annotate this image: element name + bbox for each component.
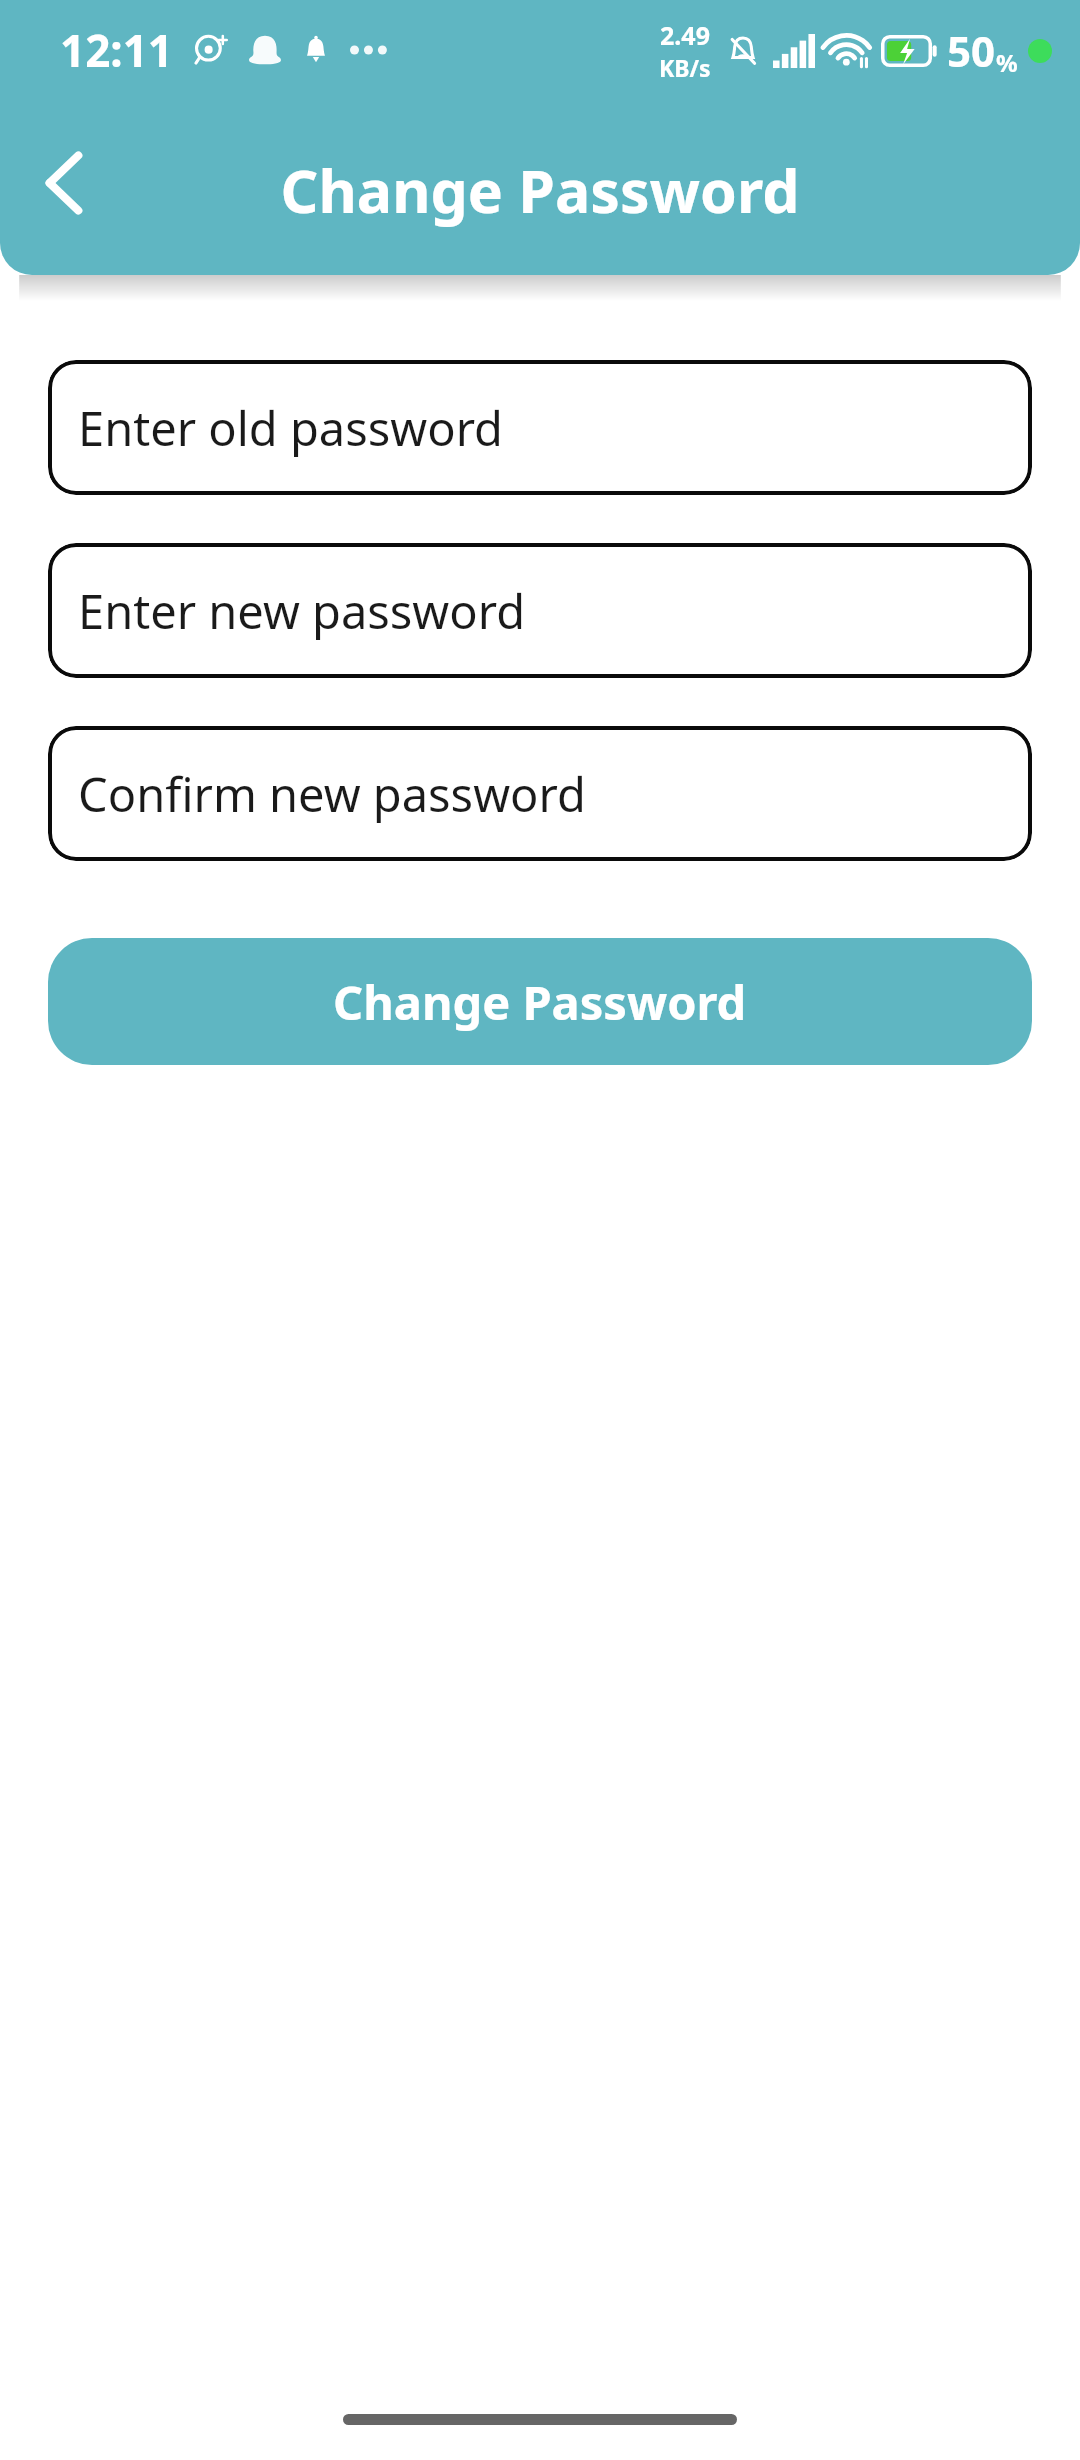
staticText: Change Password: [0, 150, 1080, 230]
staticText: Enter new password: [78, 579, 526, 643]
staticText: Change Password: [333, 970, 747, 1034]
staticText: Enter old password: [78, 396, 504, 460]
button[interactable]: Enter old password: [48, 360, 1032, 495]
button[interactable]: Back: [26, 140, 102, 226]
staticText: 50: [947, 22, 996, 79]
staticText: %: [996, 46, 1018, 79]
button[interactable]: Enter new password: [48, 543, 1032, 678]
staticText: KB/s: [659, 52, 711, 83]
button[interactable]: Change Password: [48, 938, 1032, 1065]
staticText: Confirm new password: [78, 762, 586, 826]
button[interactable]: Confirm new password: [48, 726, 1032, 861]
staticText: 12:11: [60, 20, 174, 80]
staticText: 2.49: [660, 18, 710, 52]
